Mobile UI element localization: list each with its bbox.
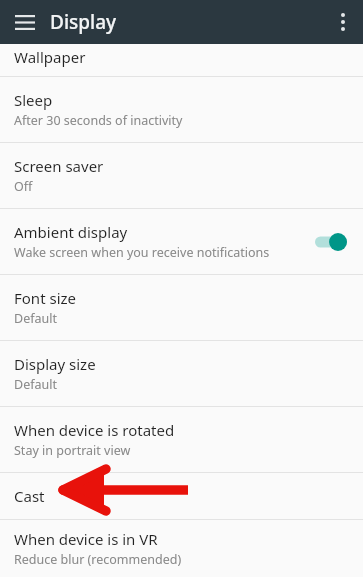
button[interactable]: Sleep <box>0 77 363 142</box>
staticText: Off <box>14 178 33 195</box>
staticText: Default <box>14 310 57 327</box>
staticText: Screen saver <box>14 156 104 176</box>
button[interactable]: Open navigation menu <box>1 0 49 44</box>
staticText: Stay in portrait view <box>14 442 131 459</box>
button[interactable]: When device is in VR <box>0 520 363 577</box>
staticText: Default <box>14 376 57 393</box>
button[interactable]: Ambient display toggle <box>313 229 349 255</box>
staticText: When device is in VR <box>14 529 158 549</box>
staticText: Display size <box>14 354 96 374</box>
staticText: Cast <box>14 486 45 506</box>
button[interactable]: Ambient display <box>0 209 363 274</box>
button[interactable]: When device is rotated <box>0 407 363 472</box>
staticText: When device is rotated <box>14 420 175 440</box>
staticText: Wallpaper <box>14 47 86 67</box>
staticText: Ambient display <box>14 222 128 242</box>
button[interactable]: Font size <box>0 275 363 340</box>
staticText: Reduce blur (recommended) <box>14 551 182 568</box>
staticText: Wake screen when you receive notificatio… <box>14 244 270 261</box>
button[interactable]: Wallpaper <box>0 44 363 76</box>
button[interactable]: Screen saver <box>0 143 363 208</box>
button[interactable]: More options <box>323 0 363 44</box>
staticText: Display <box>50 9 117 35</box>
staticText: Font size <box>14 288 77 308</box>
staticText: After 30 seconds of inactivity <box>14 112 183 129</box>
staticText: Sleep <box>14 90 53 110</box>
button[interactable]: Display size <box>0 341 363 406</box>
button[interactable]: Cast <box>0 473 363 519</box>
